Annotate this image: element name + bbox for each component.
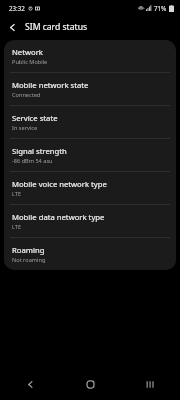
staticText: Mobile voice network type <box>12 179 107 189</box>
button[interactable]: Back <box>19 373 41 395</box>
button[interactable]: Navigate up <box>3 18 21 36</box>
button[interactable]: Signal strength <box>4 139 176 171</box>
staticText: Mobile data network type <box>12 212 105 222</box>
button[interactable]: Mobile data network type <box>4 205 176 237</box>
staticText: 23:32 <box>9 4 25 12</box>
staticText: 71% <box>154 4 167 12</box>
button[interactable]: Mobile voice network type <box>4 172 176 204</box>
button[interactable]: Mobile network state <box>4 73 176 105</box>
staticText: In service <box>12 124 38 132</box>
staticText: Mobile network state <box>12 80 89 90</box>
button[interactable]: Roaming <box>4 238 176 270</box>
button[interactable]: Home <box>79 373 101 395</box>
staticText: Not roaming <box>12 256 46 264</box>
staticText: Signal strength <box>12 146 67 156</box>
staticText: Connected <box>12 91 41 99</box>
button[interactable]: Recent apps <box>139 373 161 395</box>
staticText: LTE <box>12 223 22 231</box>
staticText: Roaming <box>12 245 45 255</box>
staticText: -86 dBm 54 asu <box>12 157 53 165</box>
staticText: LTE <box>12 190 22 198</box>
staticText: Network <box>12 47 43 57</box>
staticText: Service state <box>12 113 58 123</box>
button[interactable]: Network <box>4 40 176 72</box>
staticText: Public Mobile <box>12 58 48 66</box>
staticText: SIM card status <box>25 21 88 33</box>
button[interactable]: Service state <box>4 106 176 138</box>
